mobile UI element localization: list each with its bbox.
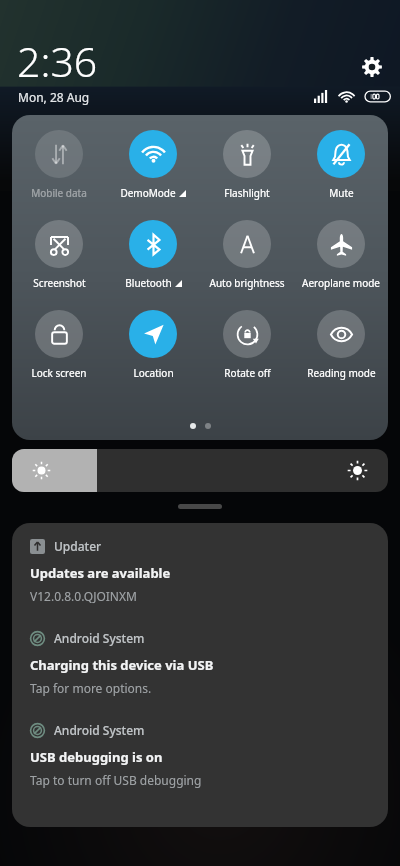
staticText: Mute <box>329 186 354 200</box>
staticText: Tap to turn off USB debugging <box>30 772 202 788</box>
staticText: Charging this device via USB <box>30 656 214 674</box>
button[interactable]: Lock screen <box>12 310 106 380</box>
staticText: USB debugging is on <box>30 748 163 766</box>
button[interactable]: Android System <box>12 615 388 707</box>
staticText: Mobile data <box>31 186 87 200</box>
staticText: Screenshot <box>33 276 86 290</box>
staticText: Reading mode <box>307 366 376 380</box>
button[interactable]: Auto brightness <box>200 220 294 290</box>
staticText: Aeroplane mode <box>302 276 380 290</box>
button[interactable]: Location <box>106 310 200 380</box>
staticText: Updater <box>54 538 102 554</box>
staticText: Lock screen <box>31 366 87 380</box>
staticText: Flashlight <box>224 186 270 200</box>
staticText: V12.0.8.0.QJOINXM <box>30 588 137 604</box>
button[interactable]: Flashlight <box>200 130 294 200</box>
staticText: Updates are available <box>30 564 171 582</box>
staticText: Mon, 28 Aug <box>18 89 90 105</box>
button[interactable]: Aeroplane mode <box>294 220 388 290</box>
button[interactable]: Settings <box>357 52 387 82</box>
staticText: Android System <box>54 630 145 646</box>
button[interactable]: Brightness <box>12 449 388 492</box>
staticText: 2:36 <box>17 33 98 89</box>
staticText: Auto brightness <box>209 276 285 290</box>
button[interactable]: Updater <box>12 523 388 615</box>
button[interactable]: Mobile data <box>12 130 106 200</box>
button[interactable]: Screenshot <box>12 220 106 290</box>
staticText: Location <box>133 366 174 380</box>
staticText: DemoMode <box>120 186 176 200</box>
button[interactable]: Reading mode <box>294 310 388 380</box>
staticText: Rotate off <box>224 366 271 380</box>
button[interactable]: Rotate off <box>200 310 294 380</box>
button[interactable]: Mute <box>294 130 388 200</box>
staticText: Bluetooth <box>125 276 172 290</box>
staticText: Android System <box>54 722 145 738</box>
button[interactable]: Android System <box>12 707 388 799</box>
button[interactable]: Bluetooth <box>106 220 200 290</box>
button[interactable]: DemoMode <box>106 130 200 200</box>
staticText: Tap for more options. <box>30 680 152 696</box>
